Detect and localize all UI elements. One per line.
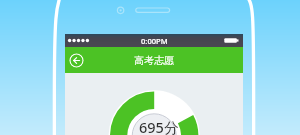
staticText: 695分 [139,117,179,135]
staticText: 0:00PM [141,36,168,46]
staticText: 高考志愿 [134,54,174,67]
button[interactable]: Back [69,53,84,68]
